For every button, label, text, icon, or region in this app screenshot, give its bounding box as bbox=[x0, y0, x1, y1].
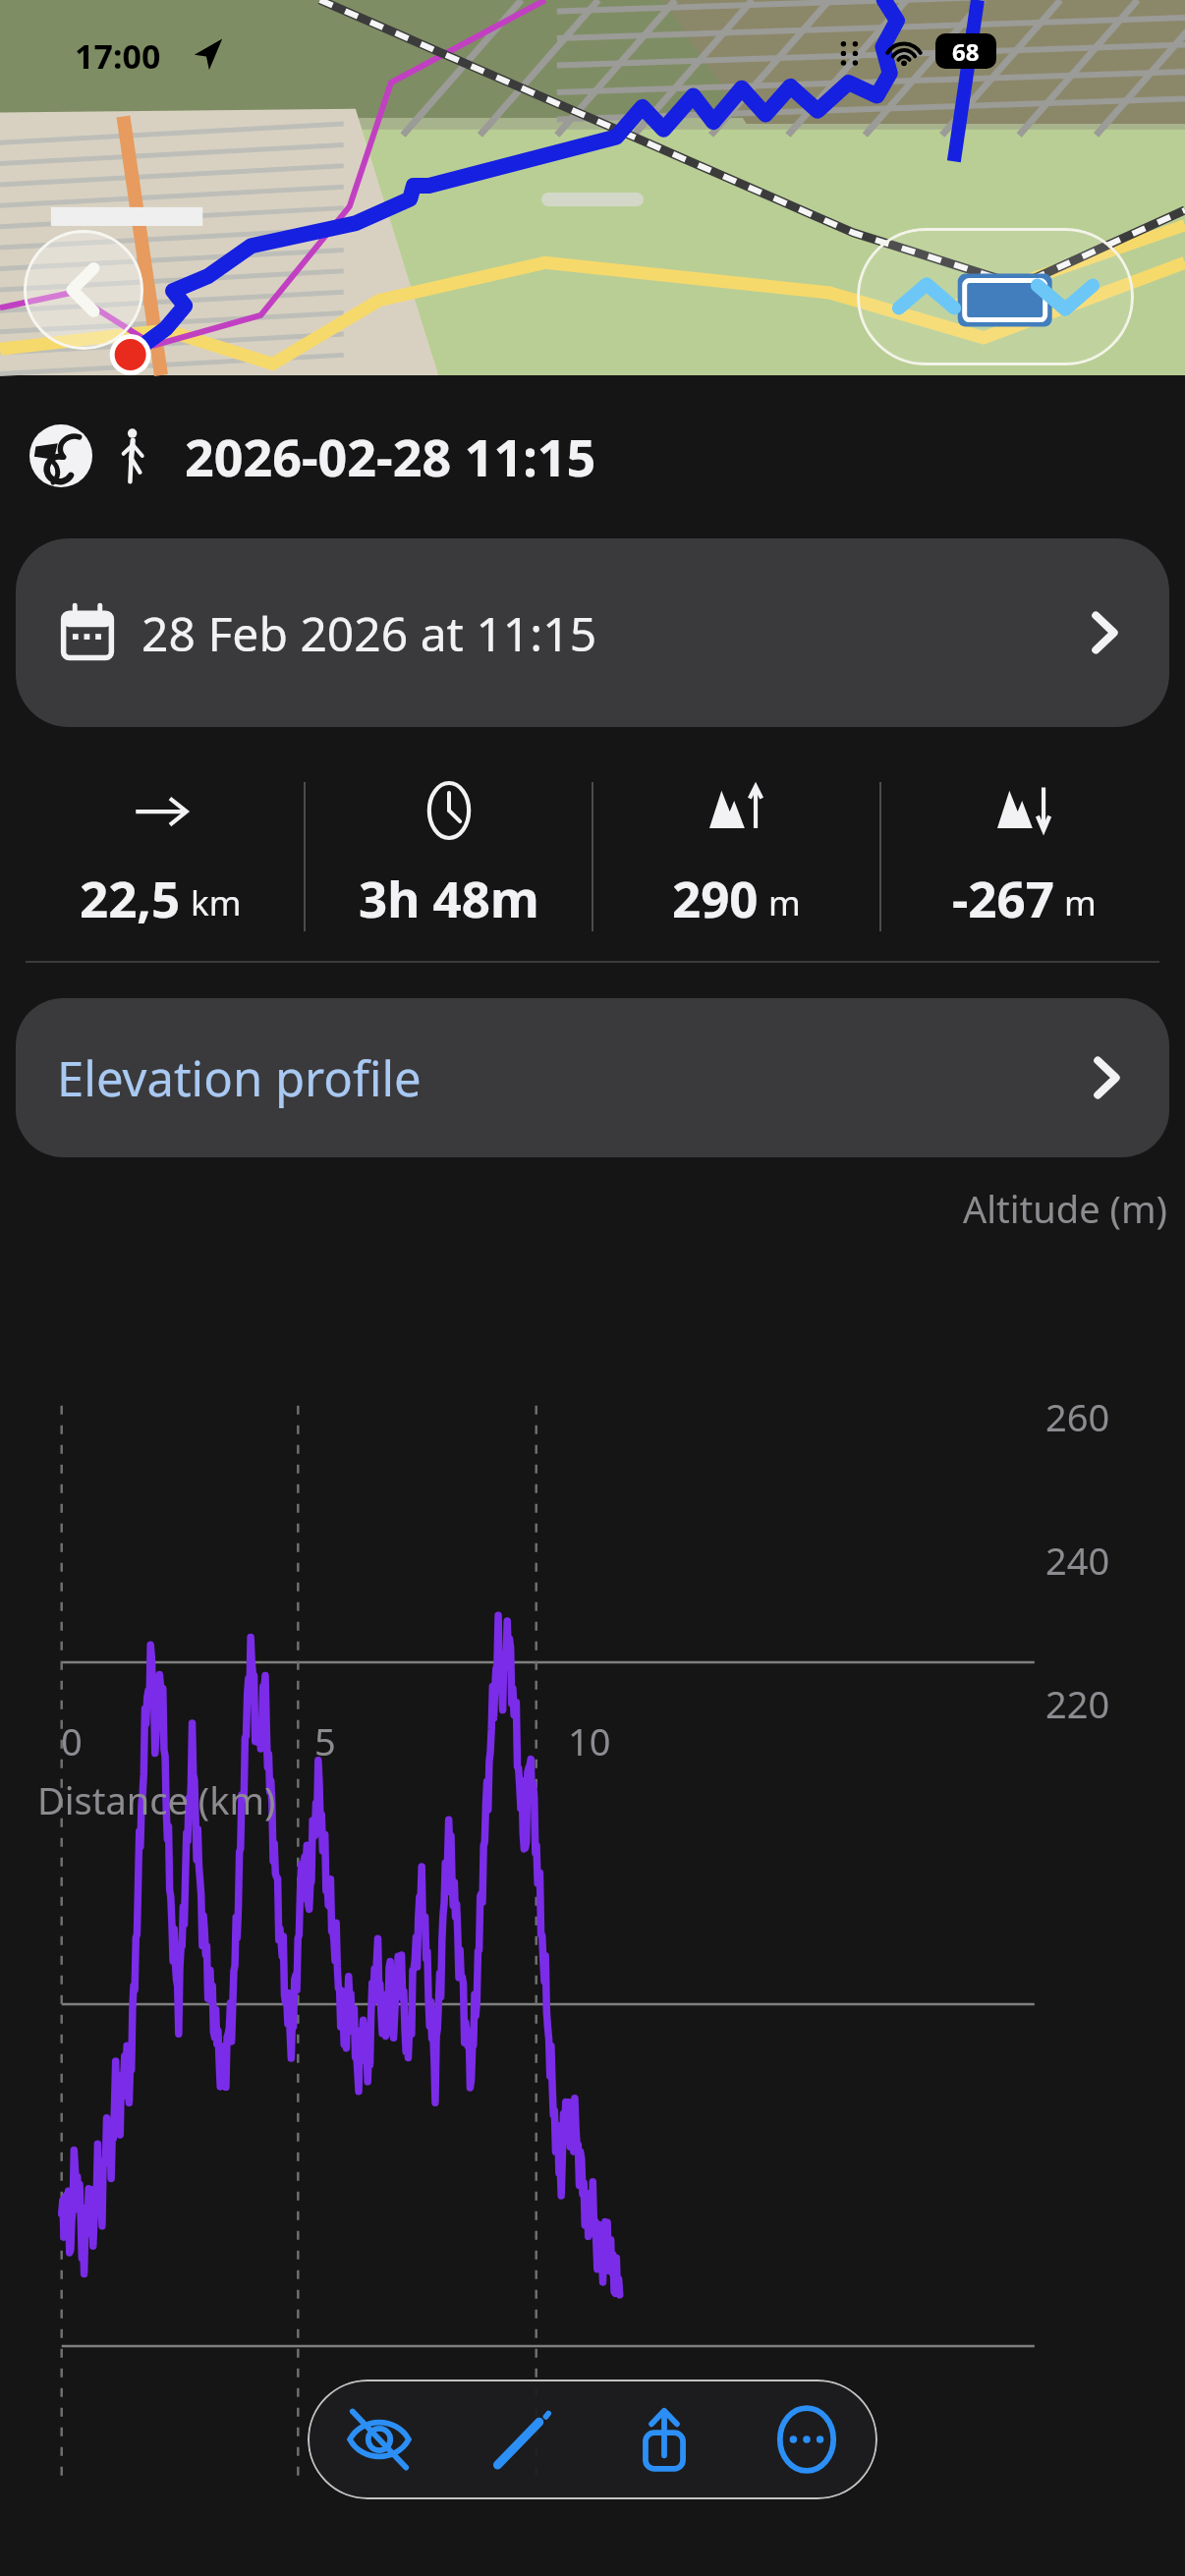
staticText: 0 bbox=[61, 1715, 83, 1766]
staticText: km bbox=[191, 879, 242, 926]
staticText: -267 bbox=[952, 864, 1054, 931]
button[interactable]: Edit track bbox=[450, 2380, 592, 2499]
staticText: 17:00 bbox=[75, 33, 161, 79]
staticText: 5 bbox=[314, 1715, 336, 1766]
staticText: 2026-02-28 11:15 bbox=[185, 421, 596, 491]
staticText: 22,5 bbox=[80, 864, 181, 931]
staticText: m bbox=[1064, 879, 1097, 926]
staticText: 290 bbox=[672, 864, 759, 931]
button[interactable]: Hide track bbox=[308, 2380, 450, 2499]
staticText: Altitude (m) bbox=[963, 1183, 1167, 1234]
staticText: 3h 48m bbox=[359, 864, 539, 931]
staticText: 28 Feb 2026 at 11:15 bbox=[141, 601, 597, 665]
staticText: Elevation profile bbox=[57, 1045, 422, 1111]
staticText: 68 bbox=[952, 35, 980, 68]
staticText: 10 bbox=[568, 1715, 611, 1766]
staticText: 240 bbox=[1045, 1535, 1110, 1586]
button[interactable]: 28 Feb 2026 at 11:15 bbox=[16, 538, 1169, 727]
button[interactable]: More options bbox=[735, 2380, 877, 2499]
staticText: 260 bbox=[1045, 1391, 1110, 1442]
button[interactable]: Elevation profile bbox=[16, 998, 1169, 1157]
staticText: Distance (km) bbox=[37, 1774, 276, 1825]
button[interactable]: Share bbox=[592, 2380, 735, 2499]
button[interactable]: Back bbox=[24, 230, 143, 350]
button[interactable]: Next track point bbox=[995, 228, 1134, 365]
staticText: 220 bbox=[1045, 1678, 1110, 1729]
button[interactable]: Previous track point bbox=[857, 228, 995, 365]
staticText: m bbox=[768, 879, 801, 926]
